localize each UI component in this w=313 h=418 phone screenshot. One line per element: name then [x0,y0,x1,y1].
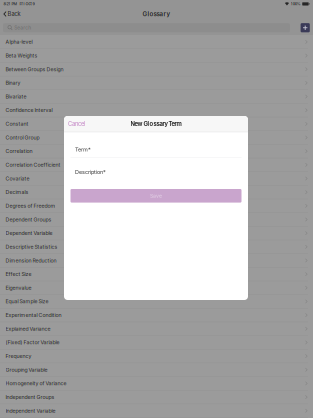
staticText: Control Group [5,134,39,141]
staticText: Eigenvalue [5,285,31,291]
button[interactable]: Explained Variance [0,322,313,336]
staticText: Bivariate [5,93,26,100]
staticText: Constant [5,121,28,127]
button[interactable]: Dependent Variable [0,226,313,240]
button[interactable]: Save [70,189,241,203]
button[interactable]: Eigenvalue [0,281,313,295]
staticText: Between Groups Design [5,66,63,72]
staticText: New Glossary Term [130,120,181,127]
staticText: Dependent Variable [5,230,52,236]
staticText: Independent Variable [5,408,55,414]
staticText: Dimension Reduction [5,257,56,264]
staticText: 100% [291,2,301,6]
button[interactable]: Equal Sample Size [0,295,313,308]
button[interactable]: Covariate [0,172,313,186]
staticText: Save [150,193,162,199]
staticText: Term* [75,146,91,153]
staticText: Confidence Interval [5,107,52,113]
staticText: Correlation [5,148,32,154]
button[interactable]: Decimals [0,186,313,199]
staticText: Alpha-level [5,39,32,45]
button[interactable]: Homogeneity of Variance [0,377,313,390]
staticText: Search [14,25,31,31]
button[interactable]: Add glossary term [301,23,310,32]
button[interactable]: Grouping Variable [0,363,313,377]
button[interactable]: Independent Variable [0,404,313,418]
button[interactable]: Cancel [64,117,89,131]
button[interactable]: Correlation Coefficient [0,158,313,172]
staticText: Dependent Groups [5,216,51,223]
staticText: Cancel [68,120,85,127]
button[interactable]: Constant [0,117,313,131]
staticText: Beta Weights [5,52,37,59]
staticText: Fri Oct 9 [19,2,34,6]
button[interactable]: Binary [0,76,313,90]
staticText: Covariate [5,175,29,182]
button[interactable]: Independent Groups [0,390,313,404]
staticText: Effect Size [5,271,31,277]
staticText: Binary [5,80,20,86]
button[interactable]: Beta Weights [0,49,313,63]
button[interactable]: Experimental Condition [0,308,313,322]
button[interactable]: Correlation [0,145,313,158]
button[interactable]: Back [0,8,24,20]
staticText: Equal Sample Size [5,298,48,305]
staticText: Independent Groups [5,394,54,400]
button[interactable]: Frequency [0,349,313,363]
button[interactable]: Dimension Reduction [0,254,313,268]
staticText: Experimental Condition [5,312,61,318]
staticText: Explained Variance [5,326,50,332]
button[interactable]: Confidence Interval [0,104,313,117]
button[interactable]: Dependent Groups [0,213,313,227]
button[interactable]: Degrees of Freedom [0,199,313,213]
staticText: Grouping Variable [5,367,47,373]
button[interactable]: Bivariate [0,90,313,104]
staticText: 8:21 PM [3,2,17,6]
staticText: Homogeneity of Variance [5,380,66,387]
staticText: Description* [75,169,106,175]
staticText: Frequency [5,353,31,359]
staticText: Descriptive Statistics [5,244,57,250]
staticText: Correlation Coefficient [5,162,60,168]
button[interactable]: Between Groups Design [0,63,313,76]
staticText: Degrees of Freedom [5,203,55,209]
button[interactable]: Descriptive Statistics [0,240,313,254]
button[interactable]: Control Group [0,131,313,145]
staticText: Glossary [142,10,170,18]
button[interactable]: Effect Size [0,267,313,281]
staticText: Back [8,10,21,17]
button[interactable]: Alpha-level [0,35,313,49]
staticText: (Fixed) Factor Variable [5,339,59,346]
button[interactable]: (Fixed) Factor Variable [0,336,313,349]
staticText: Decimals [5,189,28,195]
